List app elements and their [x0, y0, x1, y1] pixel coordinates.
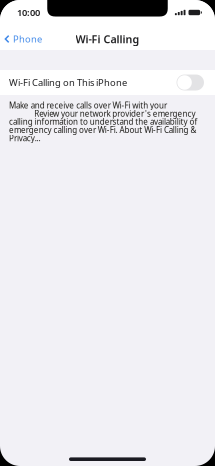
button[interactable]: Phone [0, 29, 42, 49]
staticText: 10:00 [17, 6, 40, 19]
staticText: Wi-Fi Calling on This iPhone [9, 76, 127, 89]
staticText: Phone [13, 33, 42, 45]
button[interactable]: Wi-Fi Calling on This iPhone [0, 70, 215, 95]
staticText: Make and receive calls over Wi-Fi with y… [9, 100, 197, 143]
staticText: Wi-Fi Calling [75, 32, 139, 46]
